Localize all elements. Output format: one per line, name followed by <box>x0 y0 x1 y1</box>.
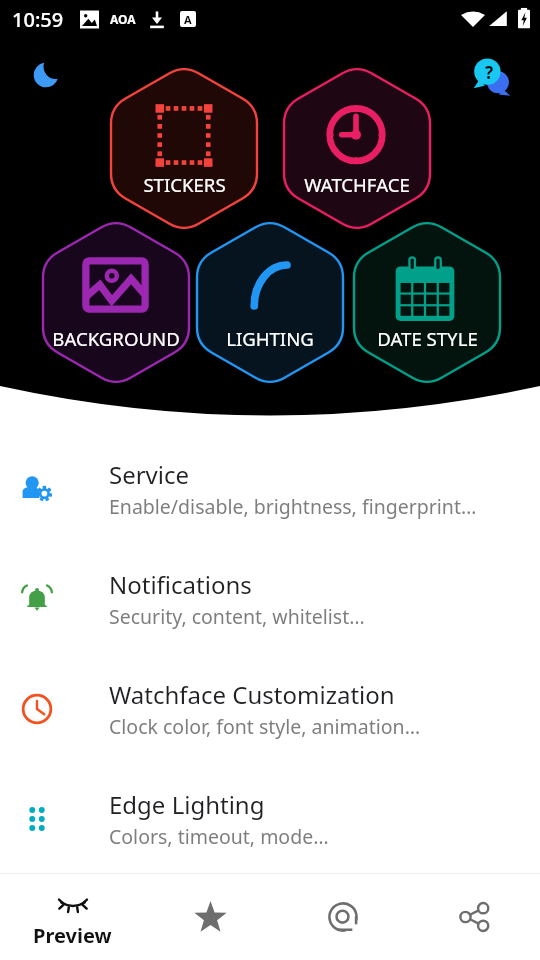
staticText: Colors, timeout, mode… <box>109 823 329 850</box>
staticText: Watchface Customization <box>109 678 395 711</box>
button[interactable]: Help <box>467 53 513 99</box>
staticText: LIGHTING <box>226 326 314 351</box>
button[interactable]: Night mode <box>26 55 66 95</box>
staticText: Service <box>109 458 190 491</box>
button[interactable]: Service <box>0 434 540 544</box>
button[interactable]: Date style <box>350 215 504 390</box>
button[interactable]: Lighting <box>193 215 347 390</box>
button[interactable]: Favorites <box>140 874 275 960</box>
staticText: 10:59 <box>12 6 64 33</box>
button[interactable]: Background <box>39 215 193 390</box>
staticText: ? <box>485 61 494 84</box>
staticText: DATE STYLE <box>377 326 478 351</box>
button[interactable]: Watchface Customization <box>0 654 540 764</box>
staticText: WATCHFACE <box>304 172 410 197</box>
staticText: AOA <box>110 11 136 27</box>
button[interactable]: Preview <box>5 874 140 960</box>
button[interactable]: Contact <box>275 874 410 960</box>
button[interactable]: Notifications <box>0 544 540 654</box>
button[interactable]: Edge Lighting <box>0 764 540 874</box>
staticText: Clock color, font style, animation… <box>109 713 421 740</box>
staticText: STICKERS <box>143 172 226 197</box>
button[interactable]: Share <box>410 874 540 960</box>
button[interactable]: Stickers <box>107 61 261 236</box>
staticText: Edge Lighting <box>109 788 265 821</box>
staticText: Security, content, whitelist… <box>109 603 365 630</box>
button[interactable]: Watchface <box>280 61 434 236</box>
staticText: A <box>184 12 192 27</box>
staticText: Preview <box>33 922 112 949</box>
staticText: BACKGROUND <box>52 326 180 351</box>
staticText: Notifications <box>109 568 252 601</box>
staticText: Enable/disable, brightness, fingerprint… <box>109 493 477 520</box>
